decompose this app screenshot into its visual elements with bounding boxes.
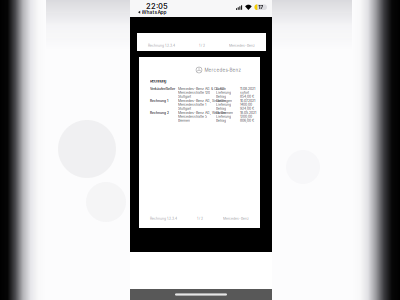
staticText: Stuttgart <box>178 107 191 110</box>
staticText: 11.08.2021 <box>240 87 255 90</box>
staticText: 18.05.2021 <box>240 111 256 114</box>
staticText: sofort <box>240 91 249 94</box>
staticText: 806,00 € <box>240 119 254 122</box>
staticText: Bremen <box>178 119 190 122</box>
staticText: Datum <box>216 87 226 90</box>
staticText: Mercedes-Benz AG, Werk Bremen <box>178 111 233 114</box>
staticText: WhatsApp <box>141 9 166 15</box>
staticText: 1400,00 <box>240 103 252 106</box>
staticText: 924,00 € <box>240 107 254 110</box>
staticText: Mercedes-Benz AG, Sindelfingen <box>178 99 232 102</box>
staticText: 22:05 <box>146 2 168 11</box>
staticText: Mercedesstraße 120 <box>178 91 210 94</box>
staticText: 10.07.2021 <box>240 99 255 102</box>
staticText: 17 <box>258 4 263 10</box>
staticText: Rechnung 1.2.3.4 <box>150 217 177 220</box>
staticText: Rechnung <box>150 79 166 83</box>
staticText: Mercedes-Benz <box>229 44 255 47</box>
staticText: Mercedes-Benz <box>204 68 241 72</box>
staticText: Rechnung 2 <box>150 111 169 115</box>
staticText: Lieferung <box>216 91 231 94</box>
staticText: 1 / 2 <box>197 217 203 220</box>
staticText: Mercedesstraße 1 <box>178 103 206 106</box>
staticText: 1200,00 <box>240 115 252 118</box>
staticText: 1 / 2 <box>199 44 205 47</box>
staticText: Mercedes-Benz AG & Co. KG <box>178 87 225 90</box>
staticText: Stuttgart <box>178 95 191 98</box>
staticText: Verkäufer/Seller <box>150 87 175 91</box>
staticText: 854,00 € <box>240 95 254 98</box>
staticText: Lieferung <box>216 115 231 118</box>
staticText: Betrag <box>216 95 226 98</box>
button[interactable]: WhatsApp <box>137 9 167 15</box>
staticText: Mercedesstraße 5 <box>178 115 207 118</box>
staticText: Lieferung <box>216 103 231 106</box>
staticText: Rechnung 1 <box>150 99 168 103</box>
staticText: Betrag <box>216 119 226 122</box>
staticText: Mercedes-Benz <box>223 217 249 220</box>
staticText: Rechnung 1.2.3.4 <box>148 44 175 47</box>
staticText: Betrag <box>216 107 226 110</box>
staticText: Datum <box>216 99 226 102</box>
staticText: Datum <box>216 111 226 114</box>
